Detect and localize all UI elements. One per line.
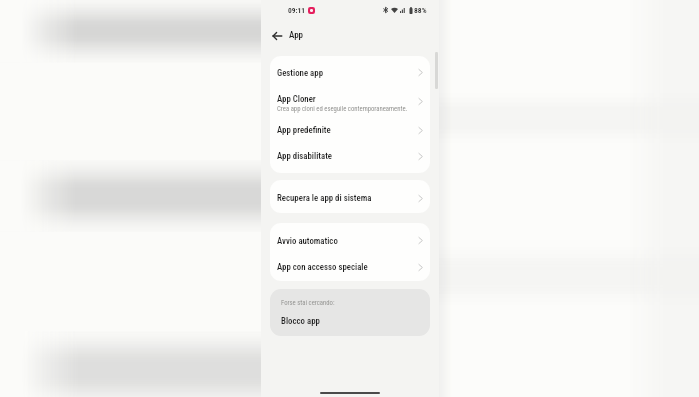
button[interactable]: App disabilitate bbox=[270, 143, 430, 169]
staticText: App predefinite bbox=[277, 125, 331, 135]
staticText: App disabilitate bbox=[277, 151, 333, 161]
staticText: Gestione app bbox=[277, 68, 323, 78]
staticText: Recupera le app di sistema bbox=[277, 193, 372, 203]
staticText: 88% bbox=[414, 6, 427, 15]
button[interactable]: Gestione app bbox=[270, 56, 430, 89]
staticText: Crea app cloni ed eseguile contemporanea… bbox=[277, 105, 408, 113]
button[interactable]: App con accesso speciale bbox=[270, 254, 430, 280]
button[interactable]: Recupera le app di sistema bbox=[270, 183, 430, 213]
staticText: App Cloner bbox=[277, 94, 316, 104]
staticText: Blocco app bbox=[281, 316, 320, 326]
staticText: App bbox=[289, 30, 304, 41]
button[interactable]: App predefinite bbox=[270, 117, 430, 143]
button[interactable]: Avvio automatico bbox=[270, 227, 430, 254]
staticText: Forse stai cercando: bbox=[281, 299, 335, 307]
staticText: Avvio automatico bbox=[277, 236, 338, 246]
staticText: App con accesso speciale bbox=[277, 262, 368, 272]
button[interactable]: App Cloner bbox=[270, 87, 430, 119]
staticText: 09:11 bbox=[288, 6, 305, 15]
button[interactable]: Back bbox=[268, 27, 286, 45]
